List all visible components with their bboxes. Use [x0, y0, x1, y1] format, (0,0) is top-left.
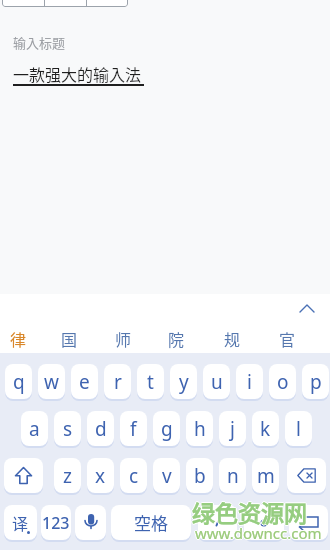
button[interactable]	[198, 505, 237, 540]
staticText: i	[247, 369, 252, 395]
staticText: 绿色资源网	[191, 495, 306, 528]
staticText: 官	[279, 327, 296, 350]
staticText: b	[194, 463, 206, 489]
staticText: z	[63, 463, 72, 489]
staticText: 师	[115, 327, 132, 350]
staticText: a	[29, 416, 40, 442]
staticText: 规	[224, 327, 241, 350]
button[interactable]: 院	[156, 325, 196, 351]
button[interactable]: q	[5, 364, 32, 399]
button[interactable]: z	[54, 458, 81, 493]
button[interactable]	[287, 458, 326, 493]
button[interactable]: w	[38, 364, 65, 399]
button[interactable]: 规	[212, 325, 252, 351]
staticText: h	[194, 416, 206, 442]
staticText: www.downcc.com	[196, 523, 323, 543]
button[interactable]: p	[302, 364, 329, 399]
button[interactable]	[4, 458, 43, 493]
button[interactable]: y	[170, 364, 197, 399]
staticText: 空格	[134, 510, 168, 535]
staticText: r	[114, 369, 122, 395]
button[interactable]: 官	[267, 325, 307, 351]
button[interactable]: s	[54, 411, 81, 446]
staticText: 绿色资源网	[192, 494, 307, 527]
staticText: x	[95, 463, 106, 489]
staticText: www.downcc.com	[195, 522, 322, 542]
button[interactable]: 译	[4, 505, 37, 540]
button[interactable]: 空格	[111, 505, 191, 540]
staticText: 院	[168, 327, 185, 350]
staticText: u	[211, 369, 223, 395]
staticText: g	[161, 416, 173, 442]
button[interactable]: k	[252, 411, 279, 446]
staticText: 输入标题	[13, 33, 66, 52]
button[interactable]: h	[186, 411, 213, 446]
button[interactable]	[294, 301, 320, 315]
staticText: o	[277, 369, 289, 395]
staticText: 一款强大的输入法	[13, 62, 142, 85]
button[interactable]: t	[137, 364, 164, 399]
staticText: 译	[12, 511, 29, 534]
button[interactable]: b	[186, 458, 213, 493]
button[interactable]: 国	[49, 325, 89, 351]
button[interactable]: d	[87, 411, 114, 446]
staticText: e	[79, 369, 90, 395]
button[interactable]: x	[87, 458, 114, 493]
button[interactable]: j	[219, 411, 246, 446]
button[interactable]: 律	[0, 325, 38, 351]
staticText: 国	[61, 327, 78, 350]
button[interactable]: v	[153, 458, 180, 493]
button[interactable]: 师	[103, 325, 143, 351]
button[interactable]: r	[104, 364, 131, 399]
staticText: www.downcc.com	[195, 524, 322, 544]
button[interactable]: f	[120, 411, 147, 446]
button[interactable]: 123	[41, 505, 71, 540]
button[interactable]: u	[203, 364, 230, 399]
button[interactable]: e	[71, 364, 98, 399]
staticText: www.downcc.com	[195, 523, 322, 543]
staticText: c	[129, 463, 139, 489]
button[interactable]: o	[269, 364, 296, 399]
staticText: www.downcc.com	[194, 523, 321, 543]
button[interactable]	[2, 0, 128, 7]
button[interactable]: l	[285, 411, 312, 446]
staticText: n	[227, 463, 239, 489]
button[interactable]	[289, 505, 328, 540]
staticText: 绿色资源网	[192, 496, 307, 529]
button[interactable]: a	[21, 411, 48, 446]
staticText: t	[147, 369, 154, 395]
staticText: l	[296, 416, 301, 442]
staticText: 绿色资源网	[192, 495, 307, 528]
staticText: d	[95, 416, 107, 442]
staticText: 律	[10, 327, 27, 350]
staticText: j	[230, 416, 235, 442]
staticText: 绿色资源网	[193, 495, 308, 528]
button[interactable]: c	[120, 458, 147, 493]
staticText: w	[44, 369, 59, 395]
staticText: s	[63, 416, 73, 442]
staticText: m	[257, 463, 275, 489]
button[interactable]: n	[219, 458, 246, 493]
staticText: 123	[42, 512, 70, 534]
staticText: f	[130, 416, 137, 442]
staticText: k	[260, 416, 271, 442]
staticText: q	[13, 369, 25, 395]
staticText: v	[162, 463, 172, 489]
button[interactable]: i	[236, 364, 263, 399]
button[interactable]	[244, 505, 284, 540]
button[interactable]: g	[153, 411, 180, 446]
staticText: y	[179, 369, 189, 395]
staticText: p	[310, 369, 322, 395]
button[interactable]	[75, 505, 106, 540]
button[interactable]: m	[252, 458, 279, 493]
